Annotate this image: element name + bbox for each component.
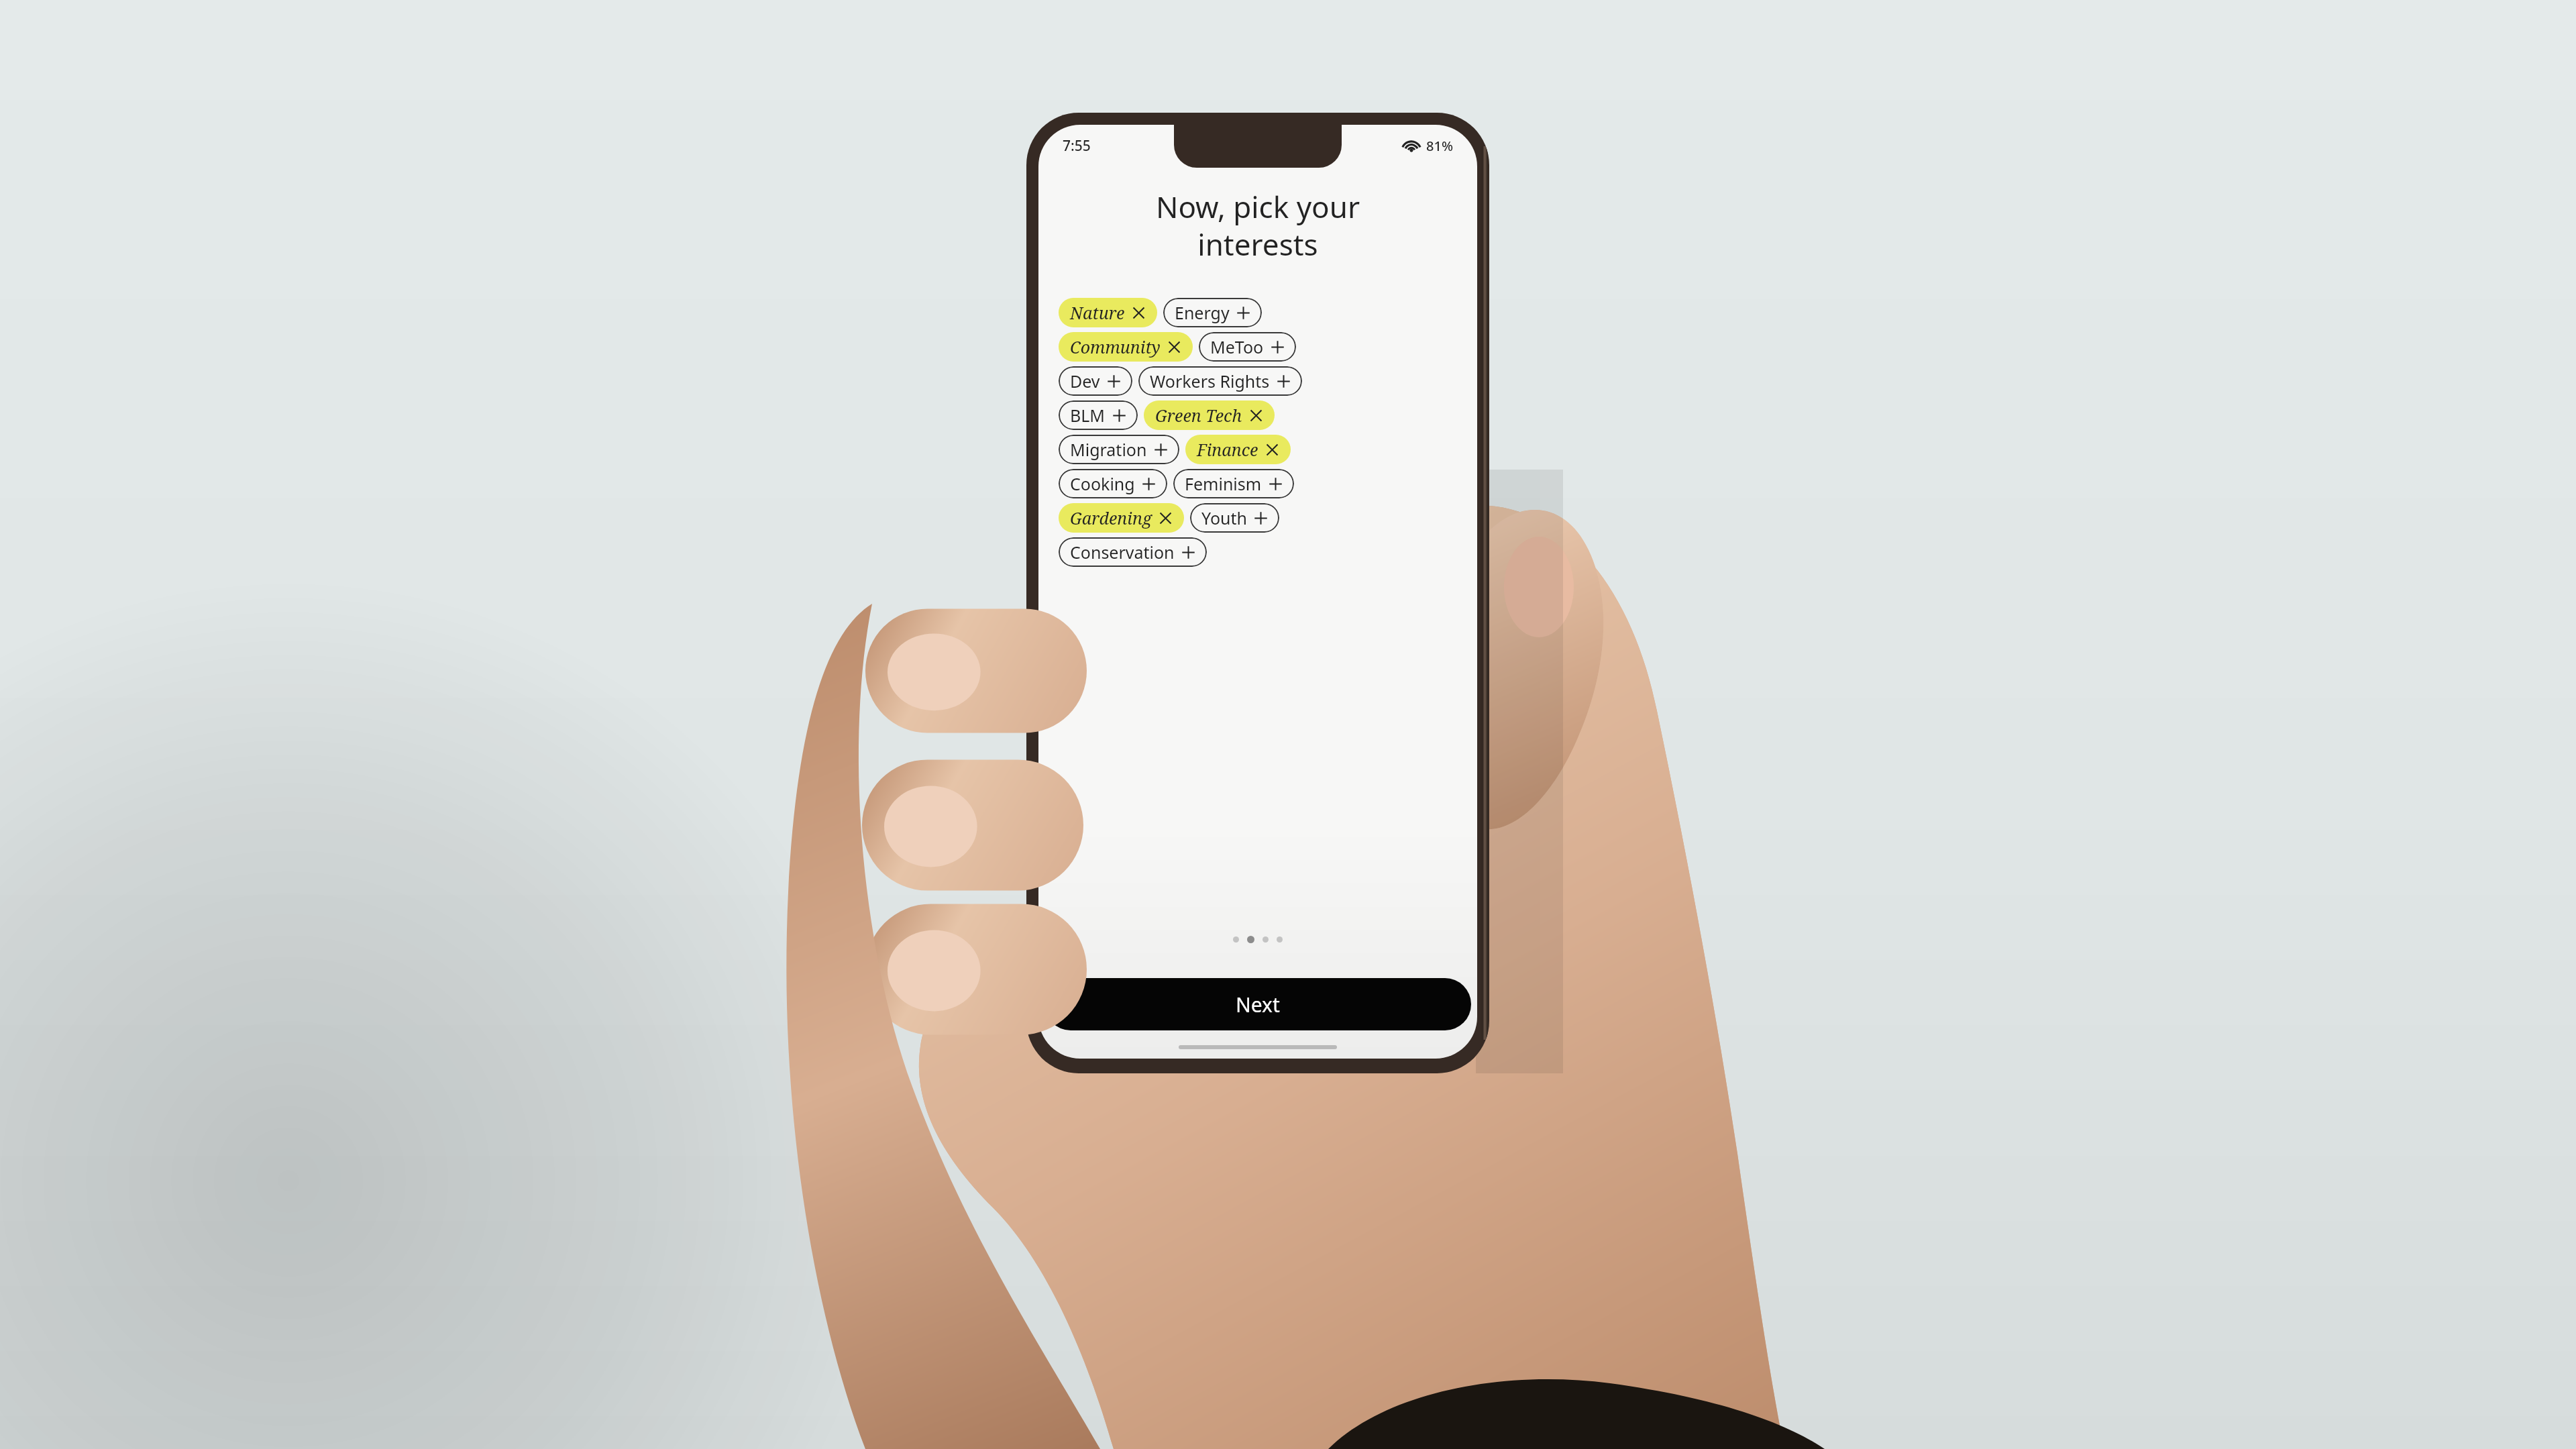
- button[interactable]: Dev: [1059, 366, 1132, 396]
- staticText: Gardening: [1070, 506, 1152, 529]
- staticText: Now, pick your interests: [1065, 186, 1450, 264]
- staticText: 81%: [1426, 137, 1453, 155]
- button[interactable]: Nature: [1059, 298, 1157, 327]
- button[interactable]: Gardening: [1059, 503, 1184, 533]
- staticText: Finance: [1197, 438, 1258, 461]
- staticText: Next: [1236, 991, 1280, 1018]
- button[interactable]: Green Tech: [1144, 400, 1275, 430]
- button[interactable]: Feminism: [1173, 469, 1294, 498]
- button[interactable]: BLM: [1059, 400, 1138, 430]
- button[interactable]: Community: [1059, 332, 1193, 362]
- staticText: Workers Rights: [1150, 370, 1270, 392]
- staticText: Green Tech: [1155, 404, 1242, 427]
- button[interactable]: Next: [1044, 978, 1471, 1030]
- staticText: Community: [1070, 335, 1161, 358]
- button[interactable]: Migration: [1059, 435, 1179, 464]
- staticText: Cooking: [1070, 472, 1135, 495]
- button[interactable]: Workers Rights: [1138, 366, 1302, 396]
- staticText: Conservation: [1070, 541, 1175, 563]
- staticText: Energy: [1175, 301, 1230, 324]
- button[interactable]: Energy: [1163, 298, 1262, 327]
- button[interactable]: Conservation: [1059, 537, 1207, 567]
- staticText: MeToo: [1210, 335, 1264, 358]
- staticText: Migration: [1070, 438, 1147, 461]
- staticText: Dev: [1070, 370, 1100, 392]
- staticText: BLM: [1070, 404, 1106, 427]
- button[interactable]: Youth: [1190, 503, 1279, 533]
- button[interactable]: Finance: [1185, 435, 1291, 464]
- button[interactable]: MeToo: [1199, 332, 1296, 362]
- staticText: Feminism: [1185, 472, 1262, 495]
- staticText: Youth: [1201, 506, 1247, 529]
- button[interactable]: Cooking: [1059, 469, 1167, 498]
- staticText: Nature: [1070, 301, 1125, 324]
- staticText: 7:55: [1063, 136, 1091, 156]
